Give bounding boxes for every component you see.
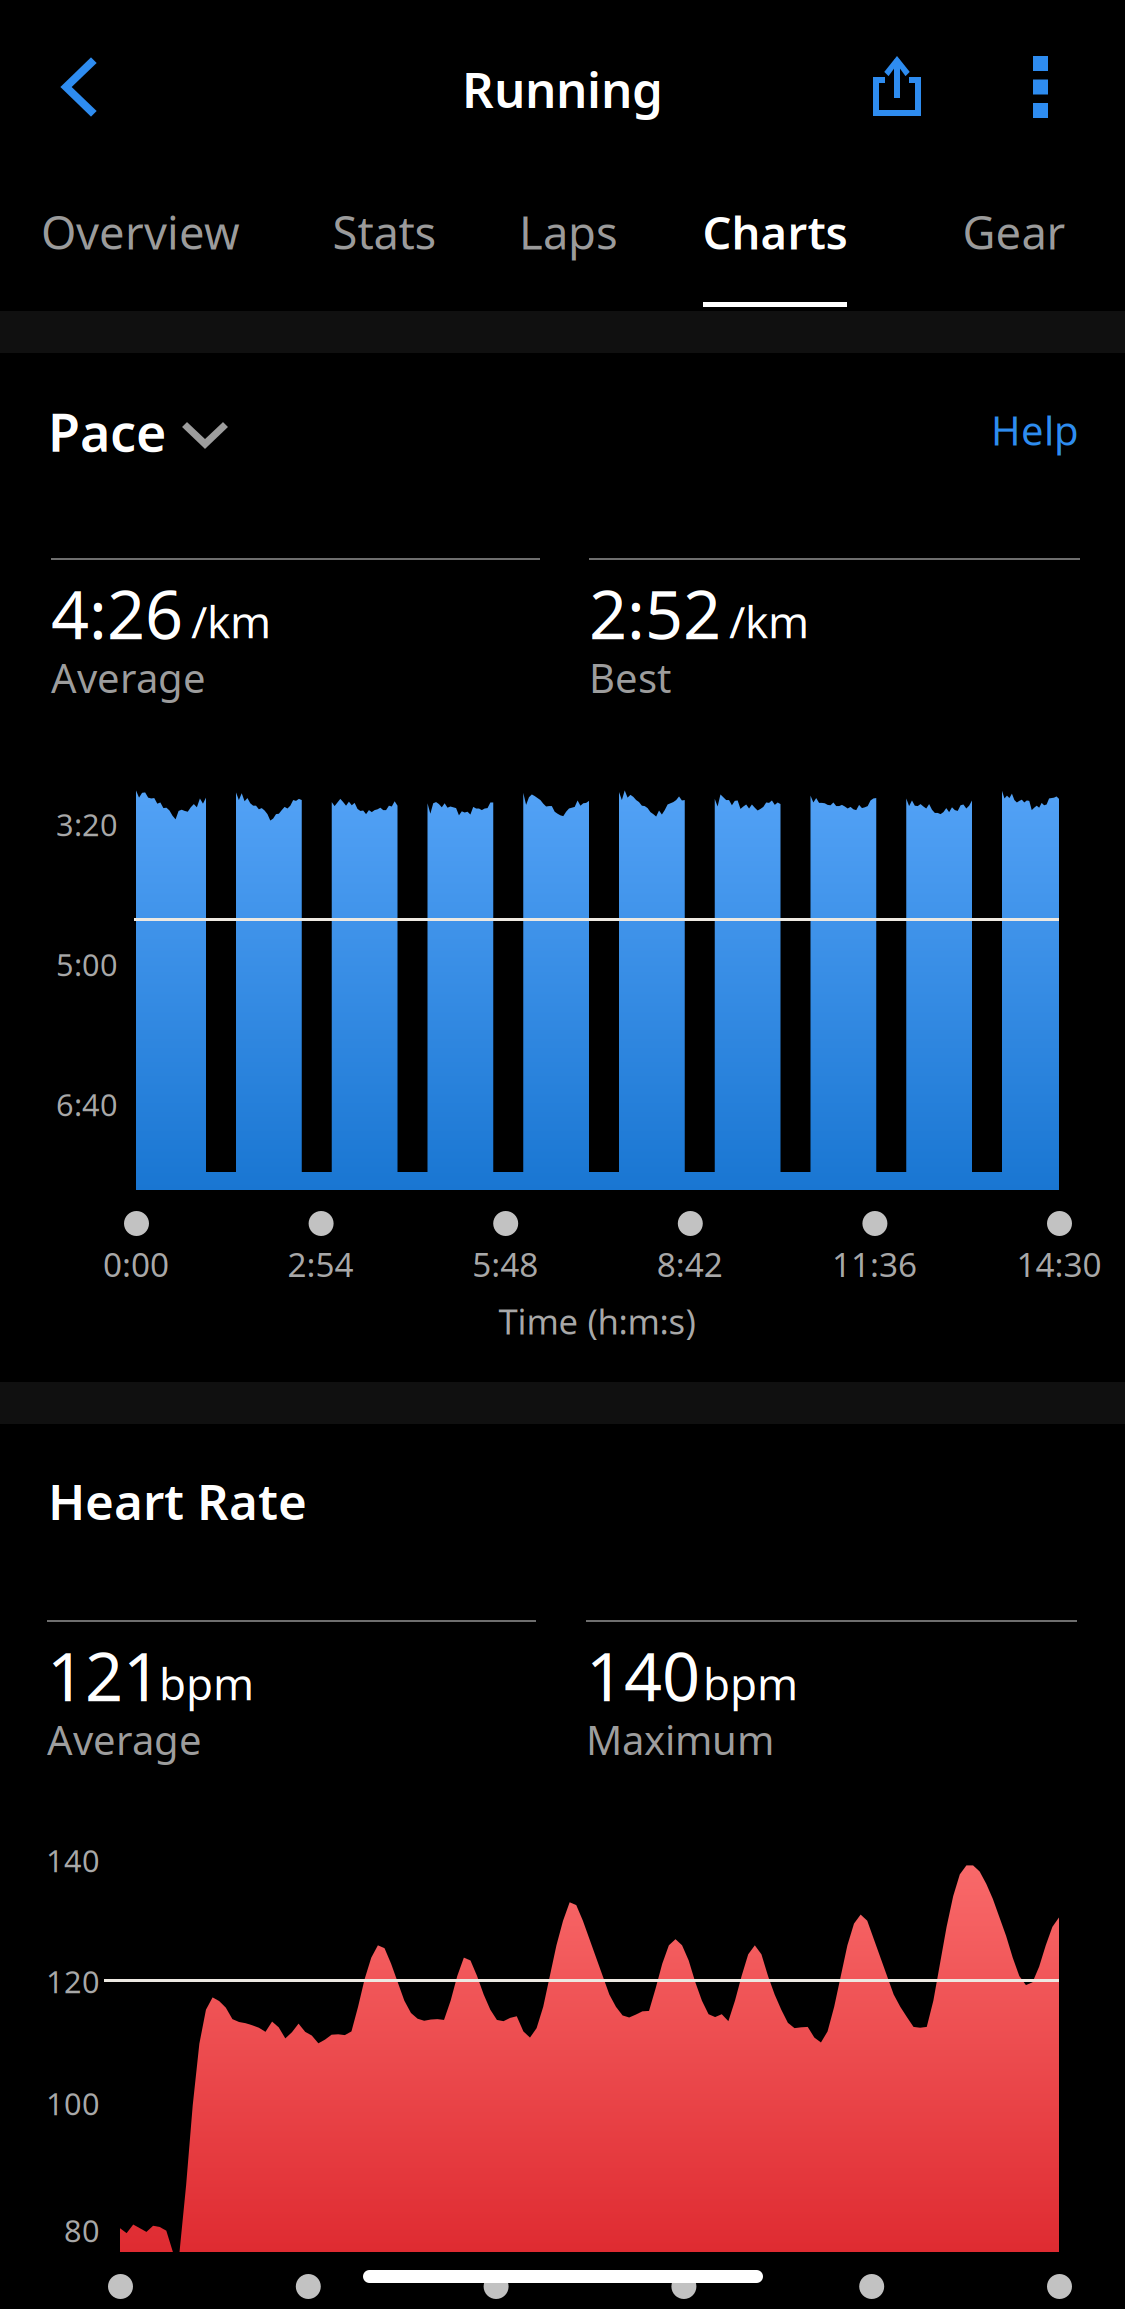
button[interactable]: Back xyxy=(4,22,136,154)
button[interactable]: Gear xyxy=(939,177,1089,287)
button[interactable]: Share xyxy=(833,22,961,154)
staticText: /km xyxy=(191,592,271,650)
staticText: 6:40 xyxy=(56,1084,118,1125)
staticText: 5:00 xyxy=(56,944,118,985)
staticText: 140 xyxy=(46,1840,100,1881)
button[interactable]: Charts xyxy=(678,177,872,287)
staticText: Gear xyxy=(962,202,1065,262)
staticText: 8:42 xyxy=(657,1242,723,1286)
button[interactable]: Help xyxy=(945,378,1125,482)
staticText: 5:48 xyxy=(472,1242,538,1286)
button[interactable]: Overview xyxy=(17,177,264,287)
staticText: 100 xyxy=(46,2083,100,2124)
staticText: Average xyxy=(47,1713,202,1766)
staticText: 11:36 xyxy=(832,1242,917,1286)
staticText: bpm xyxy=(159,1654,254,1712)
staticText: 80 xyxy=(64,2210,100,2251)
staticText: Heart Rate xyxy=(48,1468,307,1533)
button[interactable]: More options xyxy=(985,22,1097,154)
staticText: 4:26 xyxy=(51,569,183,657)
button[interactable]: Pace xyxy=(0,383,290,487)
staticText: 2:52 xyxy=(589,569,721,657)
staticText: Help xyxy=(991,403,1079,456)
staticText: Maximum xyxy=(586,1713,774,1766)
staticText: 121 xyxy=(47,1631,161,1719)
staticText: 14:30 xyxy=(1016,1242,1101,1286)
staticText: Running xyxy=(462,56,663,121)
staticText: 120 xyxy=(46,1961,100,2002)
staticText: 140 xyxy=(586,1631,700,1719)
staticText: 0:00 xyxy=(103,1242,169,1286)
staticText: bpm xyxy=(703,1654,798,1712)
staticText: Time (h:m:s) xyxy=(498,1298,695,1344)
staticText: 3:20 xyxy=(56,804,118,845)
staticText: Best xyxy=(589,651,671,704)
staticText: Charts xyxy=(702,202,847,262)
button[interactable]: Stats xyxy=(305,177,464,287)
staticText: Laps xyxy=(519,202,618,262)
button[interactable]: Laps xyxy=(491,177,646,287)
staticText: Pace xyxy=(48,397,166,466)
staticText: /km xyxy=(729,592,809,650)
staticText: Stats xyxy=(332,202,436,262)
staticText: 2:54 xyxy=(288,1242,354,1286)
staticText: Average xyxy=(51,651,206,704)
staticText: Overview xyxy=(41,202,240,262)
